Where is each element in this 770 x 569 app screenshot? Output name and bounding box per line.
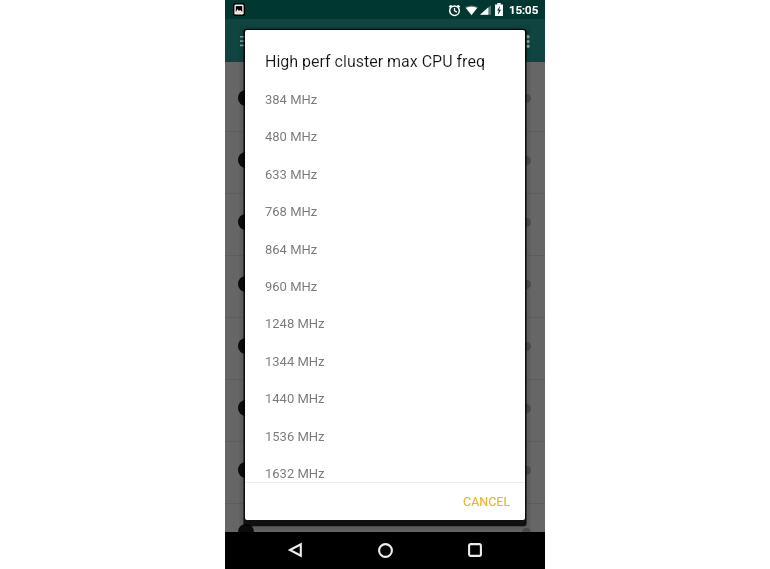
button[interactable]: 1440 MHz [245, 380, 525, 417]
staticText: 1248 MHz [265, 316, 325, 331]
button[interactable] [225, 131, 545, 193]
staticText: 480 MHz [265, 129, 318, 144]
button[interactable]: CANCEL [454, 485, 520, 518]
staticText: 384 MHz [265, 92, 318, 107]
button[interactable]: 1536 MHz [245, 418, 525, 455]
staticText: 633 MHz [265, 167, 318, 182]
button[interactable]: 1632 MHz [245, 455, 525, 492]
button[interactable]: 864 MHz [245, 231, 525, 268]
staticText: 1440 MHz [265, 391, 325, 406]
staticText: 1344 MHz [265, 354, 325, 369]
button[interactable] [225, 441, 545, 503]
button[interactable] [225, 193, 545, 255]
button[interactable]: More options [512, 25, 544, 57]
staticText: CANCEL [463, 494, 511, 509]
staticText: 1632 MHz [265, 466, 325, 481]
button[interactable]: Recent apps [457, 532, 493, 568]
staticText: 864 MHz [265, 242, 318, 257]
button[interactable] [225, 379, 545, 441]
button[interactable] [225, 255, 545, 317]
staticText: 960 MHz [265, 279, 318, 294]
button[interactable] [225, 69, 545, 131]
staticText: 15:05 [509, 3, 539, 16]
button[interactable]: 480 MHz [245, 118, 525, 155]
button[interactable] [225, 317, 545, 379]
button[interactable]: Back [277, 532, 313, 568]
staticText: 1536 MHz [265, 429, 325, 444]
button[interactable]: 960 MHz [245, 268, 525, 305]
button[interactable] [225, 503, 545, 565]
button[interactable]: 633 MHz [245, 156, 525, 193]
button[interactable]: 768 MHz [245, 193, 525, 230]
button[interactable]: Home [367, 532, 403, 568]
button[interactable]: 1248 MHz [245, 305, 525, 342]
staticText: 768 MHz [265, 204, 318, 219]
staticText: High perf cluster max CPU freq [265, 52, 485, 71]
button[interactable]: Navigation menu [232, 25, 264, 57]
button[interactable]: 1344 MHz [245, 343, 525, 380]
button[interactable]: 384 MHz [245, 81, 525, 118]
